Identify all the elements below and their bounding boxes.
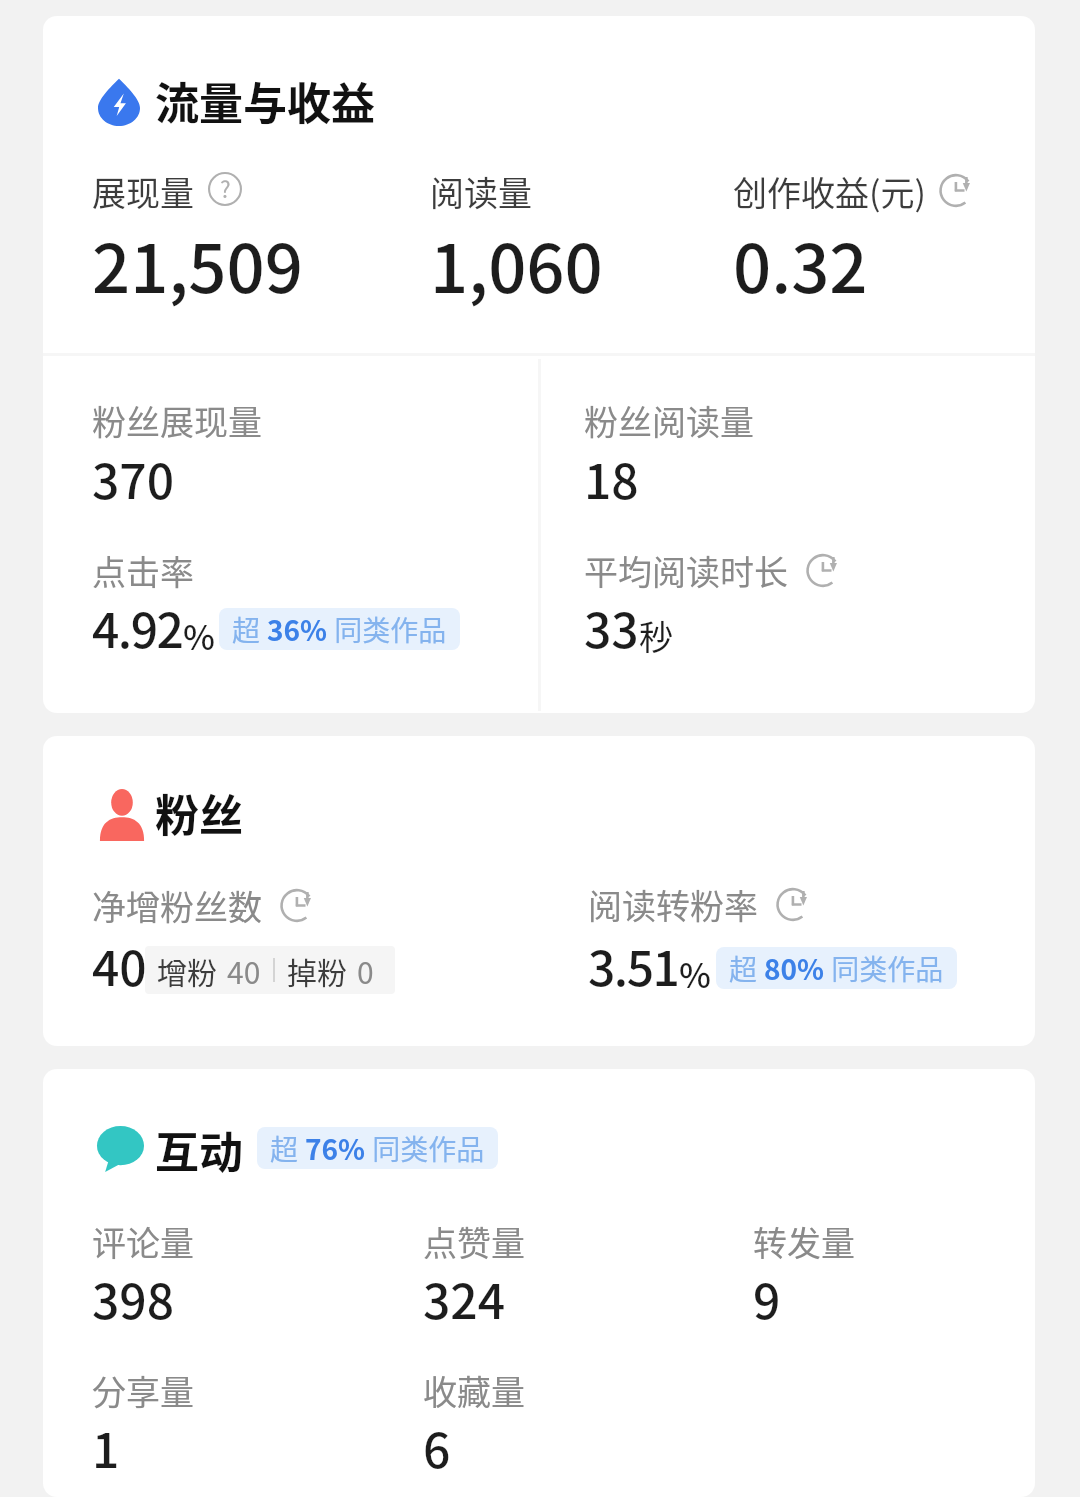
- button[interactable]: 阅读转粉率: [588, 880, 814, 999]
- staticText: 33: [584, 592, 639, 662]
- button[interactable]: 点击率: [92, 546, 215, 665]
- button[interactable]: 粉丝阅读量: [584, 396, 754, 515]
- staticText: 3.51: [588, 930, 679, 1000]
- staticText: %: [679, 949, 711, 998]
- staticText: ?: [220, 172, 231, 204]
- staticText: 分享量: [92, 1366, 194, 1415]
- button[interactable]: 阅读量: [430, 167, 603, 313]
- other: Updated periodically: [777, 886, 814, 923]
- button[interactable]: 超: [716, 947, 957, 989]
- staticText: 展现量: [92, 167, 194, 216]
- staticText: 平均阅读时长: [584, 546, 788, 595]
- staticText: 超: [729, 948, 764, 989]
- staticText: 阅读转粉率: [588, 880, 758, 929]
- staticText: 76%: [305, 1128, 366, 1169]
- staticText: 秒: [639, 611, 673, 660]
- button[interactable]: 增粉: [145, 946, 395, 994]
- staticText: 1: [92, 1412, 120, 1482]
- button[interactable]: What is this metric?: [208, 172, 242, 206]
- staticText: 40: [227, 949, 261, 992]
- button[interactable]: 分享量: [92, 1366, 194, 1485]
- staticText: 6: [423, 1412, 451, 1482]
- staticText: 净增粉丝数: [92, 881, 262, 930]
- staticText: %: [183, 611, 215, 660]
- staticText: 点赞量: [423, 1217, 525, 1266]
- staticText: 398: [92, 1263, 175, 1333]
- other: Updated periodically: [807, 552, 844, 589]
- staticText: 同类作品: [366, 1128, 485, 1169]
- staticText: 增粉: [157, 949, 217, 992]
- staticText: 掉粉: [287, 949, 347, 992]
- button[interactable]: Traffic and revenue: [92, 63, 374, 152]
- button[interactable]: Interactions: [90, 1111, 246, 1200]
- staticText: 阅读量: [430, 167, 532, 216]
- staticText: 4.92: [92, 592, 183, 662]
- button[interactable]: 评论量: [92, 1217, 194, 1336]
- staticText: 18: [584, 443, 639, 513]
- staticText: 同类作品: [328, 609, 447, 650]
- staticText: 同类作品: [825, 948, 944, 989]
- staticText: 0.32: [733, 215, 868, 312]
- button[interactable]: 创作收益(元): [733, 167, 977, 313]
- staticText: 粉丝: [155, 781, 243, 845]
- staticText: 超: [232, 609, 267, 650]
- button[interactable]: Fans: [92, 774, 248, 863]
- other: Updated periodically: [940, 172, 977, 209]
- button[interactable]: 点赞量: [423, 1217, 525, 1336]
- button[interactable]: 超: [219, 608, 460, 650]
- other: Fans: [98, 789, 146, 841]
- button[interactable]: 净增粉丝数: [92, 881, 318, 1000]
- staticText: 9: [753, 1263, 781, 1333]
- staticText: 80%: [764, 948, 825, 989]
- staticText: 370: [92, 443, 175, 513]
- button[interactable]: 展现量: [92, 167, 303, 313]
- staticText: 创作收益(元): [733, 167, 926, 216]
- staticText: 21,509: [92, 215, 303, 312]
- other: Traffic and revenue: [98, 78, 140, 126]
- staticText: 粉丝阅读量: [584, 396, 754, 445]
- staticText: 324: [423, 1263, 506, 1333]
- staticText: 粉丝展现量: [92, 396, 262, 445]
- button[interactable]: 粉丝展现量: [92, 396, 262, 515]
- staticText: 互动: [155, 1118, 243, 1182]
- staticText: 1,060: [430, 215, 603, 312]
- button[interactable]: 转发量: [753, 1217, 855, 1336]
- staticText: 点击率: [92, 546, 194, 595]
- staticText: 转发量: [753, 1217, 855, 1266]
- staticText: 40: [92, 930, 147, 1000]
- staticText: 评论量: [92, 1217, 194, 1266]
- other: Interactions: [96, 1126, 144, 1172]
- button[interactable]: 平均阅读时长: [584, 546, 844, 665]
- staticText: 收藏量: [423, 1366, 525, 1415]
- button[interactable]: 收藏量: [423, 1366, 525, 1485]
- staticText: 0: [357, 949, 374, 992]
- staticText: 流量与收益: [155, 69, 375, 133]
- staticText: 超: [270, 1128, 305, 1169]
- other: Updated periodically: [281, 887, 318, 924]
- staticText: 36%: [267, 609, 328, 650]
- button[interactable]: 超: [257, 1127, 498, 1169]
